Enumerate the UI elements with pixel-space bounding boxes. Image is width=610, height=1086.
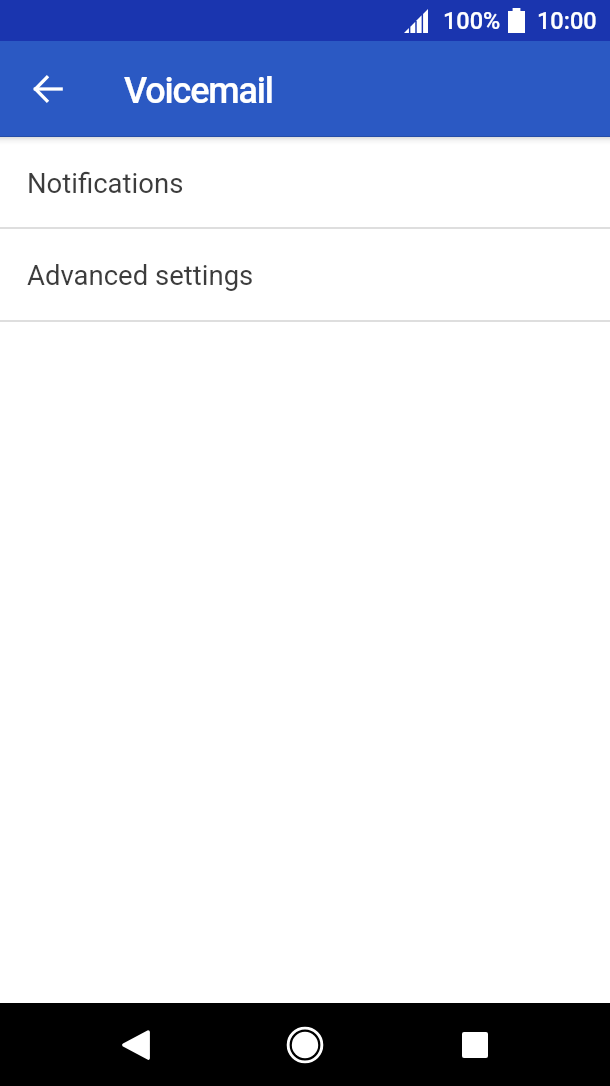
button[interactable]: Advanced settings	[0, 229, 610, 320]
staticText: 100%	[443, 7, 501, 35]
button[interactable]: Back	[51, 1003, 220, 1086]
staticText: 10:00	[537, 7, 597, 35]
button[interactable]: Recents	[390, 1003, 560, 1086]
staticText: Notifications	[27, 167, 184, 199]
button[interactable]: Back	[12, 41, 84, 137]
staticText: Voicemail	[124, 70, 273, 112]
button[interactable]: Home	[220, 1003, 390, 1086]
button[interactable]: Notifications	[0, 137, 610, 227]
staticText: Advanced settings	[27, 259, 254, 291]
